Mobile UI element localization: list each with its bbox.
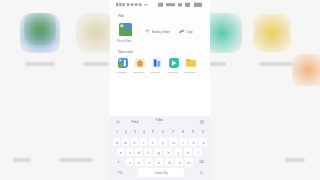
staticText: g	[157, 150, 160, 155]
staticText: t	[152, 140, 154, 145]
button[interactable]: n	[175, 158, 183, 166]
button[interactable]: d	[135, 148, 142, 156]
staticText: b	[168, 160, 171, 165]
button[interactable]: Filed	[123, 116, 147, 127]
staticText: Nearby Share	[152, 30, 170, 34]
staticText: 0	[202, 130, 204, 134]
staticText: m	[187, 160, 191, 165]
button[interactable]: x	[135, 158, 143, 166]
button[interactable]: q	[113, 138, 120, 146]
button[interactable]: c	[145, 158, 153, 166]
staticText: Filed	[131, 120, 139, 124]
button[interactable]: s	[126, 148, 133, 156]
staticText: 2	[125, 130, 127, 134]
button[interactable]: ⇧	[113, 158, 124, 166]
staticText: Copy	[186, 30, 193, 34]
button[interactable]: File Man...	[132, 57, 147, 74]
staticText: q	[115, 140, 118, 145]
button[interactable]: u	[169, 138, 177, 146]
button[interactable]: Nearby Share	[144, 28, 171, 35]
staticText: Latest Day	[155, 171, 168, 175]
staticText: File	[118, 13, 124, 18]
staticText: Q	[200, 171, 203, 175]
button[interactable]: File Man...	[183, 57, 198, 74]
staticText: .	[189, 170, 190, 175]
staticText: ⇧	[117, 160, 120, 164]
button[interactable]: Q	[195, 168, 207, 177]
button[interactable]: f	[144, 148, 152, 156]
button[interactable]: Emoji	[113, 116, 123, 127]
button[interactable]: y	[159, 138, 167, 146]
staticText: 3	[134, 130, 136, 134]
staticText: Files	[156, 118, 163, 122]
button[interactable]: p	[199, 138, 207, 146]
button[interactable]: File preview	[119, 23, 132, 36]
staticText: 5	[152, 130, 154, 134]
button[interactable]: 4	[140, 128, 147, 136]
staticText: File Man...	[132, 70, 147, 73]
button[interactable]: 1	[113, 128, 120, 136]
button[interactable]: m	[185, 158, 193, 166]
button[interactable]: z	[126, 158, 133, 166]
button[interactable]: r	[140, 138, 147, 146]
button[interactable]: ⌫	[195, 158, 207, 166]
button[interactable]: 0	[199, 128, 207, 136]
button[interactable]: b	[165, 158, 173, 166]
staticText: w	[124, 140, 127, 145]
staticText: Share with	[118, 50, 133, 54]
staticText: 4	[143, 130, 145, 134]
button[interactable]: t	[149, 138, 157, 146]
button[interactable]: l	[194, 148, 202, 156]
staticText: 6	[162, 130, 164, 134]
staticText: File Rec...	[149, 70, 164, 73]
button[interactable]: 8	[179, 128, 187, 136]
staticText: j	[178, 150, 179, 155]
button[interactable]: k	[184, 148, 192, 156]
button[interactable]: 3	[131, 128, 138, 136]
staticText: a	[119, 150, 122, 155]
button[interactable]: File Rec...	[115, 57, 130, 74]
staticText: o	[192, 140, 195, 145]
button[interactable]: o	[189, 138, 197, 146]
staticText: h	[167, 150, 170, 155]
staticText: v	[158, 160, 160, 165]
button[interactable]: e	[131, 138, 138, 146]
staticText: p	[202, 140, 205, 145]
button[interactable]: 5	[149, 128, 157, 136]
button[interactable]: Files	[147, 116, 172, 127]
button[interactable]: 7	[169, 128, 177, 136]
button[interactable]: 2	[122, 128, 129, 136]
button[interactable]: g	[154, 148, 162, 156]
button[interactable]: j	[174, 148, 182, 156]
staticText: 7	[172, 130, 174, 134]
button[interactable]: Copy	[178, 28, 194, 35]
button[interactable]: ?123	[113, 168, 127, 177]
button[interactable]: a	[117, 148, 124, 156]
button[interactable]: File Rec...	[149, 57, 164, 74]
button[interactable]: File Rec...	[166, 57, 181, 74]
staticText: r	[143, 140, 145, 145]
staticText: File Man...	[183, 70, 198, 73]
staticText: y	[162, 140, 164, 145]
button[interactable]: Keyboard settings	[197, 116, 207, 127]
staticText: e	[133, 140, 136, 145]
button[interactable]: w	[122, 138, 129, 146]
button[interactable]: 9	[189, 128, 197, 136]
staticText: f	[147, 150, 149, 155]
staticText: z	[129, 160, 131, 165]
staticText: File Rec...	[166, 70, 181, 73]
staticText: c	[148, 160, 150, 165]
button[interactable]: v	[155, 158, 163, 166]
staticText: 1	[116, 130, 118, 134]
staticText: k	[187, 150, 189, 155]
staticText: l	[198, 150, 199, 155]
button[interactable]: h	[164, 148, 172, 156]
staticText: u	[172, 140, 175, 145]
staticText: 8	[182, 130, 184, 134]
staticText: x	[138, 160, 140, 165]
button[interactable]: Space	[138, 168, 184, 177]
button[interactable]: ,	[129, 168, 136, 177]
button[interactable]: 6	[159, 128, 167, 136]
button[interactable]: i	[179, 138, 187, 146]
